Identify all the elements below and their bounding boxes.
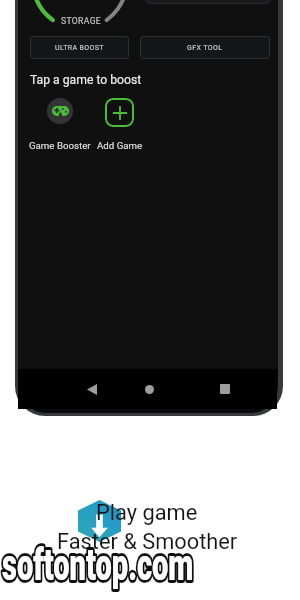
button[interactable]: Back <box>62 369 121 409</box>
staticText: STORAGE <box>61 16 102 26</box>
button[interactable] <box>145 0 271 4</box>
staticText: GFX TOOL <box>187 44 223 52</box>
staticText: Tap a game to boost <box>30 73 142 87</box>
button[interactable]: Home <box>120 369 179 409</box>
button[interactable] <box>96 98 142 152</box>
staticText: Add Game <box>97 140 167 151</box>
staticText: softontop.com <box>2 539 194 591</box>
button[interactable]: GFX TOOL <box>140 36 270 59</box>
button[interactable] <box>29 98 91 152</box>
staticText: Faster & Smoother <box>57 529 238 555</box>
staticText: softontop.com <box>2 539 194 591</box>
staticText: Game Booster <box>29 140 109 151</box>
staticText: Play game <box>96 500 198 526</box>
button[interactable]: Recent apps <box>195 369 254 409</box>
button[interactable]: ULTRA BOOST <box>30 36 129 59</box>
staticText: ULTRA BOOST <box>55 44 104 52</box>
